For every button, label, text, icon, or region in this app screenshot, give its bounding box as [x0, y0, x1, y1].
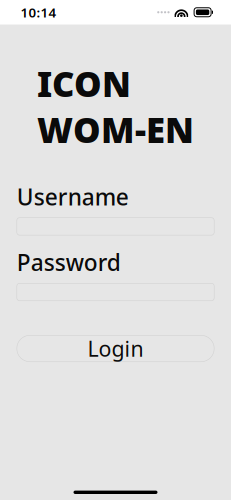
staticText: Login [87, 334, 143, 363]
button[interactable]: Login [17, 335, 214, 362]
staticText: ICON WOM-EN [37, 60, 194, 153]
staticText: Username [17, 182, 129, 212]
staticText: 10:14 [20, 3, 56, 21]
staticText: Password [17, 247, 121, 277]
